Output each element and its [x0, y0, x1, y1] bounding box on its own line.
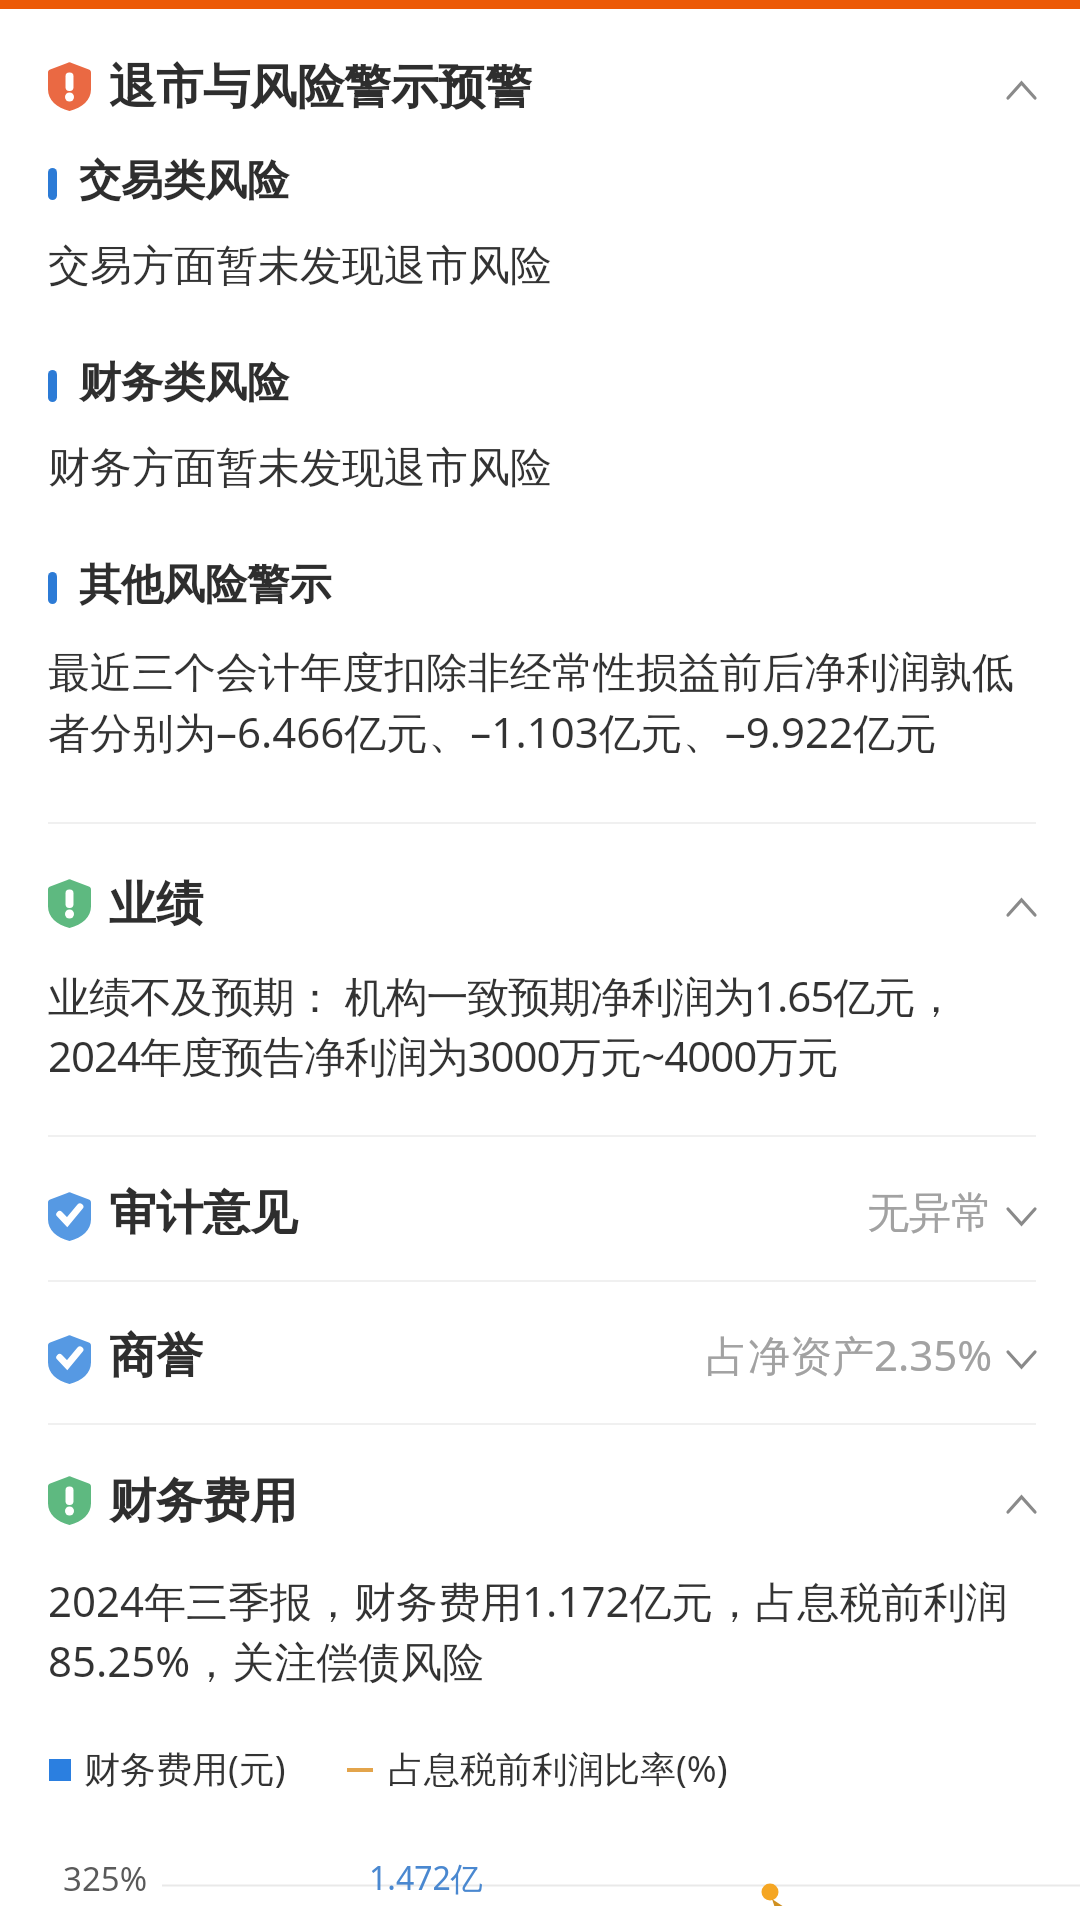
staticText: 财务方面暂未发现退市风险	[48, 439, 552, 497]
button[interactable]: 审计意见	[0, 1137, 1080, 1280]
other: Collapse section	[1008, 83, 1035, 98]
staticText: 财务费用(元)	[84, 1747, 286, 1793]
staticText: 商誉	[109, 1330, 203, 1386]
staticText: 审计意见	[109, 1187, 297, 1243]
button[interactable]: 其他风险警示	[0, 557, 1080, 613]
staticText: 交易方面暂未发现退市风险	[48, 237, 552, 295]
button[interactable]: 商誉	[0, 1282, 1080, 1423]
other: Expand section	[1008, 1352, 1035, 1367]
button[interactable]: 交易类风险	[0, 153, 1080, 209]
other: Expand section	[1008, 1209, 1035, 1224]
staticText: 325%	[63, 1863, 148, 1899]
staticText: 业绩不及预期： 机构一致预期净利润为1.65亿元，2024年度预告净利润为300…	[48, 966, 1022, 1082]
staticText: 1.472亿	[369, 1862, 483, 1899]
staticText: 占净资产2.35%	[706, 1332, 993, 1384]
other: Collapse section	[1008, 1497, 1035, 1512]
staticText: 2024年三季报，财务费用1.172亿元，占息税前利润85.25%，关注偿债风险	[48, 1571, 1022, 1687]
staticText: 无异常	[867, 1190, 993, 1240]
staticText: 其他风险警示	[79, 557, 331, 613]
staticText: 业绩	[109, 878, 203, 934]
button[interactable]: 退市与风险警示预警	[0, 27, 1080, 151]
staticText: 占息税前利润比率(%)	[388, 1747, 728, 1793]
button[interactable]: 财务费用(元)	[49, 1747, 286, 1793]
button[interactable]: 占息税前利润比率(%)	[347, 1747, 728, 1793]
button[interactable]: 财务费用	[0, 1455, 1080, 1551]
staticText: 退市与风险警示预警	[109, 61, 532, 117]
staticText: 最近三个会计年度扣除非经常性损益前后净利润孰低者分别为–6.466亿元、–1.1…	[48, 644, 1022, 760]
button[interactable]: 业绩	[0, 858, 1080, 954]
staticText: 交易类风险	[79, 153, 289, 209]
other: Collapse section	[1008, 900, 1035, 915]
button[interactable]: 财务类风险	[0, 355, 1080, 411]
staticText: 财务费用	[109, 1475, 297, 1531]
staticText: 财务类风险	[79, 355, 289, 411]
